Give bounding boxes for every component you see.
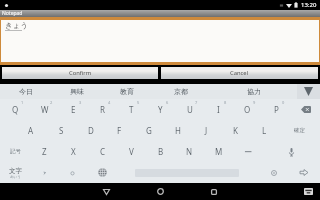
button[interactable]: K xyxy=(221,120,250,141)
staticText: 2 xyxy=(50,100,53,105)
button[interactable]: L xyxy=(250,120,279,141)
staticText: ー xyxy=(244,147,252,157)
staticText: 今日 xyxy=(19,87,33,96)
button[interactable]: Confirm xyxy=(2,67,158,79)
button[interactable]: Backspace xyxy=(291,99,320,120)
button[interactable]: ー xyxy=(233,141,262,162)
button[interactable]: Emoji xyxy=(259,162,288,183)
button[interactable]: C xyxy=(88,141,117,162)
button[interactable]: 協力 xyxy=(210,84,297,99)
button[interactable]: Z xyxy=(30,141,59,162)
button[interactable]: 今日 xyxy=(0,84,52,99)
button[interactable]: D xyxy=(76,120,105,141)
button[interactable]: Expand suggestions xyxy=(297,84,320,99)
staticText: 6 xyxy=(166,100,169,105)
staticText: 確定 xyxy=(294,127,305,134)
staticText: L xyxy=(262,125,267,136)
staticText: 5 xyxy=(137,100,140,105)
button[interactable]: Voice input xyxy=(262,141,320,162)
staticText: J xyxy=(205,125,208,136)
staticText: O xyxy=(244,104,251,115)
button[interactable]: Comma xyxy=(30,162,59,183)
staticText: Z xyxy=(42,146,47,157)
button[interactable]: P xyxy=(262,99,291,120)
staticText: D xyxy=(88,125,94,136)
button[interactable]: B xyxy=(146,141,175,162)
staticText: 京都 xyxy=(174,87,188,96)
button[interactable]: Switch keyboard xyxy=(302,187,314,196)
staticText: X xyxy=(71,146,76,157)
staticText: あいう xyxy=(10,175,21,179)
button[interactable]: 京都 xyxy=(152,84,210,99)
staticText: A xyxy=(28,125,34,136)
staticText: 13:20 xyxy=(301,1,317,9)
button[interactable]: T xyxy=(117,99,146,120)
button[interactable]: H xyxy=(163,120,192,141)
button[interactable]: V xyxy=(117,141,146,162)
button[interactable]: I xyxy=(204,99,233,120)
staticText: 3 xyxy=(79,100,82,105)
staticText: C xyxy=(100,146,106,157)
button[interactable]: G xyxy=(134,120,163,141)
staticText: K xyxy=(233,125,238,136)
staticText: P xyxy=(274,104,279,115)
button[interactable]: 文字 xyxy=(0,162,30,183)
staticText: Cancel xyxy=(230,69,249,77)
button[interactable]: W xyxy=(30,99,59,120)
button[interactable]: R xyxy=(88,99,117,120)
button[interactable]: Period xyxy=(59,162,86,183)
button[interactable]: Y xyxy=(146,99,175,120)
staticText: 9 xyxy=(253,100,256,105)
button[interactable]: E xyxy=(59,99,88,120)
button[interactable]: Q xyxy=(0,99,30,120)
staticText: Y xyxy=(158,104,163,115)
staticText: 教育 xyxy=(120,87,134,96)
staticText: 4 xyxy=(108,100,111,105)
button[interactable]: 教育 xyxy=(102,84,152,99)
button[interactable]: Next xyxy=(288,162,320,183)
button[interactable]: Home xyxy=(151,183,169,200)
staticText: V xyxy=(129,146,134,157)
staticText: 0 xyxy=(282,100,285,105)
staticText: W xyxy=(41,104,49,115)
staticText: 協力 xyxy=(247,87,261,96)
button[interactable]: 確定 xyxy=(279,120,320,141)
staticText: きょう xyxy=(5,21,29,30)
staticText: N xyxy=(186,146,193,157)
button[interactable]: J xyxy=(192,120,221,141)
button[interactable]: 興味 xyxy=(52,84,102,99)
button[interactable]: O xyxy=(233,99,262,120)
button[interactable]: Change language xyxy=(86,162,118,183)
staticText: 7 xyxy=(195,100,198,105)
button[interactable]: Recent apps xyxy=(205,183,223,200)
staticText: S xyxy=(59,125,64,136)
button[interactable]: X xyxy=(59,141,88,162)
button[interactable]: U xyxy=(175,99,204,120)
staticText: T xyxy=(129,104,134,115)
staticText: 1 xyxy=(21,100,24,105)
staticText: G xyxy=(146,125,152,136)
staticText: Q xyxy=(12,104,19,115)
staticText: R xyxy=(100,104,105,115)
staticText: 文字 xyxy=(9,167,22,175)
staticText: H xyxy=(175,125,181,136)
button[interactable]: S xyxy=(46,120,76,141)
staticText: E xyxy=(71,104,76,115)
staticText: M xyxy=(215,146,223,157)
staticText: 記号 xyxy=(10,148,21,155)
button[interactable]: M xyxy=(204,141,233,162)
staticText: Confirm xyxy=(69,69,92,77)
staticText: I xyxy=(217,104,220,115)
staticText: U xyxy=(187,104,193,115)
button[interactable]: A xyxy=(16,120,46,141)
button[interactable]: N xyxy=(175,141,204,162)
staticText: 8 xyxy=(224,100,227,105)
staticText: F xyxy=(117,125,122,136)
button[interactable]: F xyxy=(105,120,134,141)
button[interactable]: Hide keyboard xyxy=(97,183,115,200)
staticText: Notepad xyxy=(2,10,23,17)
button[interactable]: 記号 xyxy=(0,141,30,162)
button[interactable]: Cancel xyxy=(161,67,318,79)
staticText: B xyxy=(158,146,164,157)
